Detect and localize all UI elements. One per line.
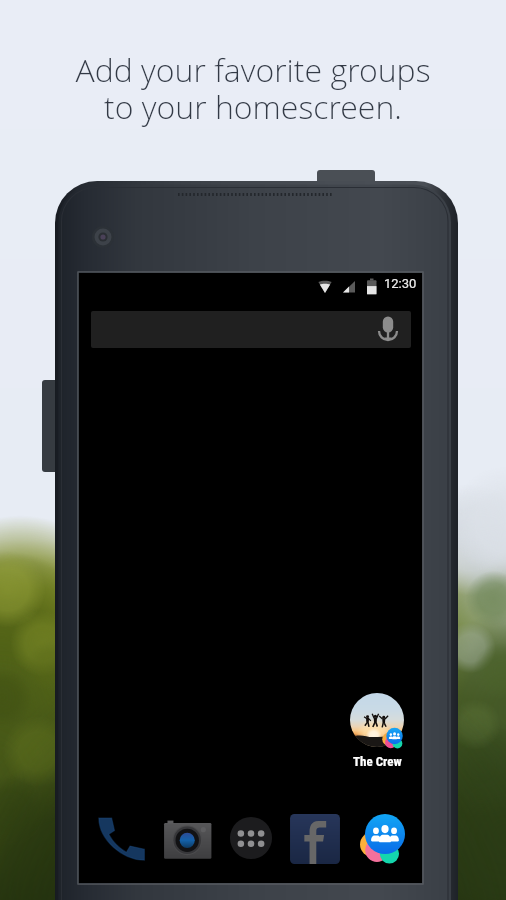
- staticText: Add your favorite groups to your homescr…: [75, 48, 431, 128]
- button[interactable]: Search: [91, 311, 411, 348]
- button[interactable]: Camera: [156, 806, 220, 870]
- staticText: 12:30: [384, 276, 417, 291]
- button[interactable]: Phone: [90, 806, 154, 870]
- button[interactable]: The Crew: [343, 693, 411, 769]
- staticText: The Crew: [353, 754, 402, 769]
- button[interactable]: Facebook: [283, 806, 347, 870]
- button[interactable]: All apps: [219, 806, 283, 870]
- button[interactable]: Groups: [353, 806, 417, 870]
